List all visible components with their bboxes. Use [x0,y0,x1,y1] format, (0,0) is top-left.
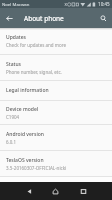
staticText: Android version [6,131,44,138]
button[interactable]: Legal information [0,81,112,100]
button[interactable]: TeslaOS version [0,151,112,176]
staticText: 6.0.1 [6,139,17,145]
staticText: 10:45 [98,1,110,7]
staticText: 3.5-20160307-OFFICIAL-nicki [6,165,67,171]
staticText: Updates [6,34,26,41]
staticText: Device model [6,106,39,113]
button[interactable]: Back [20,182,39,200]
staticText: C1904 [6,114,20,120]
staticText: Phone number, signal, etc. [6,69,62,75]
button[interactable]: Home [46,182,65,200]
staticText: Noel Macwan [2,1,30,7]
button[interactable]: Search [94,8,112,28]
button[interactable]: Status [0,55,112,80]
button[interactable]: Android version [0,125,112,150]
staticText: About phone [24,14,64,23]
staticText: Check for updates and more [6,42,67,48]
button[interactable]: Device model [0,101,112,124]
button[interactable]: Recent apps [74,182,93,200]
button[interactable]: Back [0,8,18,28]
staticText: Legal information [6,87,49,94]
staticText: Status [6,61,22,68]
staticText: TeslaOS version [6,157,44,164]
button[interactable]: Updates [0,28,112,54]
